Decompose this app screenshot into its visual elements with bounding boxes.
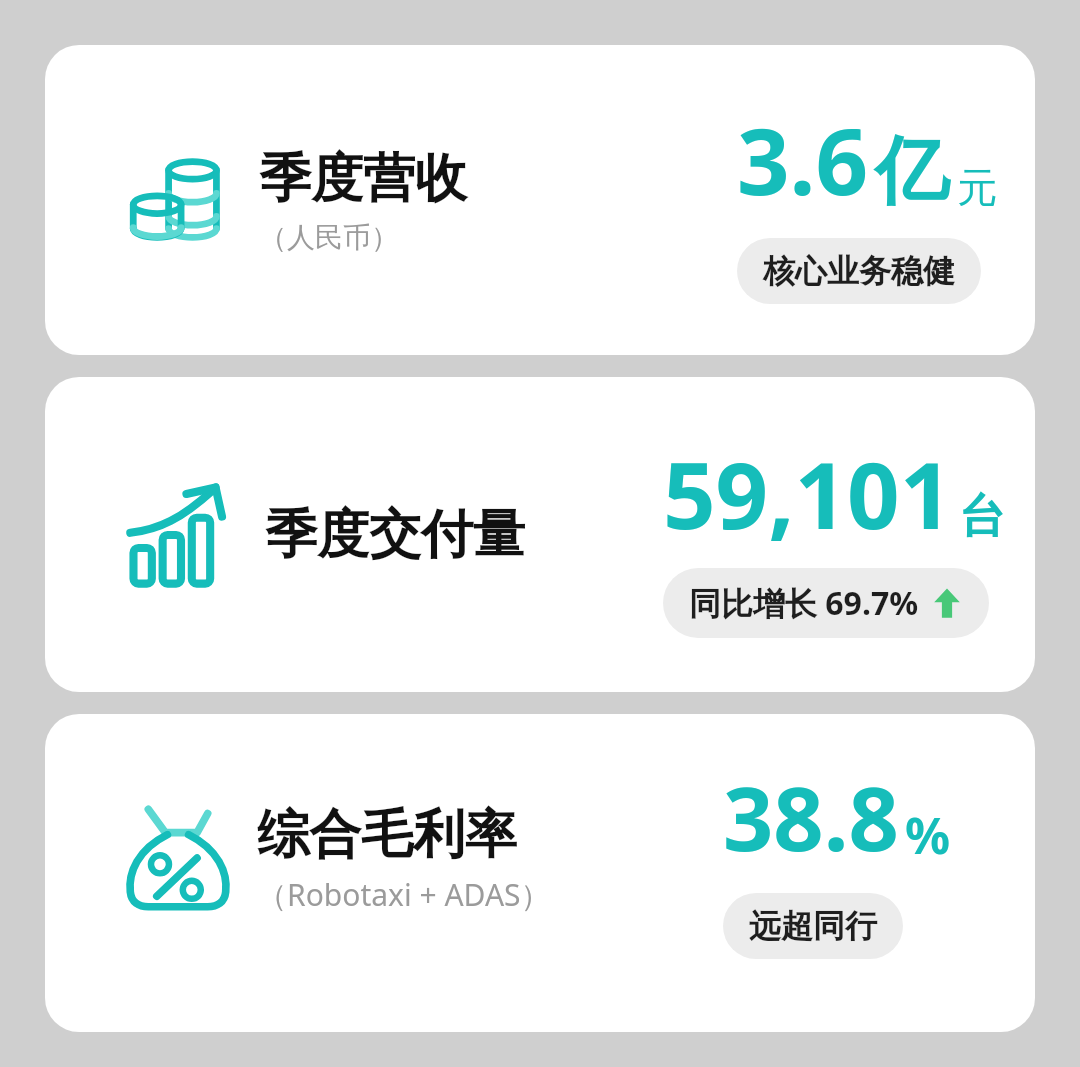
staticText: 38.8 <box>723 757 899 877</box>
other: Gross margin <box>125 805 231 911</box>
other: Revenue <box>127 148 231 252</box>
staticText: （Robotaxi + ADAS） <box>257 874 551 915</box>
staticText: 远超同行 <box>749 906 877 946</box>
staticText: 59,101 <box>663 431 953 556</box>
staticText: 季度交付量 <box>265 502 525 568</box>
staticText: 3.6 <box>737 97 869 222</box>
button[interactable]: Deliveries <box>45 377 1035 692</box>
staticText: 季度营收 <box>259 146 467 212</box>
staticText: （人民币） <box>259 220 399 255</box>
other: Deliveries <box>127 481 235 589</box>
staticText: 亿 <box>875 125 949 218</box>
staticText: % <box>905 801 951 869</box>
staticText: 核心业务稳健 <box>763 251 955 291</box>
other: Growth up <box>931 587 963 619</box>
button[interactable]: 远超同行 <box>723 893 903 959</box>
staticText: 台 <box>959 488 1005 546</box>
button[interactable]: 核心业务稳健 <box>737 238 981 304</box>
staticText: 元 <box>957 162 997 212</box>
staticText: 同比增长 69.7% <box>689 581 919 625</box>
staticText: 综合毛利率 <box>257 802 517 868</box>
button[interactable]: 同比增长 69.7% <box>663 568 989 638</box>
button[interactable]: Gross margin <box>45 714 1035 1032</box>
button[interactable]: Revenue <box>45 45 1035 355</box>
